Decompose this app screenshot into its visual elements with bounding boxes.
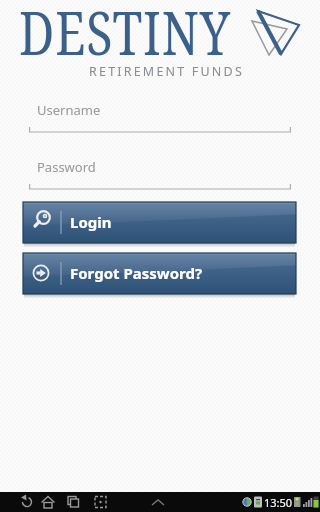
- button[interactable]: [14, 492, 40, 512]
- staticText: RETIREMENT FUNDS: [89, 63, 244, 80]
- staticText: DESTINY: [19, 0, 231, 73]
- button[interactable]: Login: [23, 202, 296, 243]
- button[interactable]: [146, 492, 172, 512]
- button[interactable]: [29, 98, 291, 133]
- staticText: Password: [37, 158, 96, 176]
- button[interactable]: [240, 492, 320, 512]
- button[interactable]: [36, 492, 62, 512]
- button[interactable]: [29, 155, 291, 190]
- staticText: Username: [37, 101, 101, 119]
- button[interactable]: [88, 492, 114, 512]
- staticText: Forgot Password?: [70, 263, 203, 283]
- staticText: 13:50: [264, 495, 293, 510]
- button[interactable]: [62, 492, 88, 512]
- staticText: Login: [70, 212, 112, 232]
- button[interactable]: Forgot Password?: [23, 253, 296, 294]
